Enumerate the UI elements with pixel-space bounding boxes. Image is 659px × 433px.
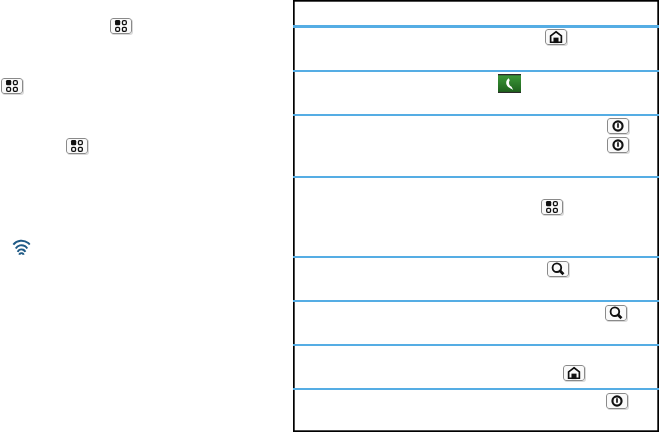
button[interactable]: Power (607, 118, 629, 134)
button[interactable]: Wi-Fi (13, 240, 30, 257)
button[interactable]: Power (607, 137, 629, 153)
button[interactable]: Search (605, 305, 627, 321)
button[interactable]: Home (563, 365, 585, 381)
button[interactable]: Power (606, 393, 628, 409)
button[interactable]: Apps (541, 199, 563, 215)
button[interactable]: Search (547, 261, 569, 277)
button[interactable]: Call (498, 74, 521, 93)
button[interactable]: Home (545, 29, 567, 45)
button[interactable]: Apps (66, 138, 88, 154)
button[interactable]: Apps (110, 18, 132, 34)
button[interactable]: Apps (1, 78, 23, 94)
